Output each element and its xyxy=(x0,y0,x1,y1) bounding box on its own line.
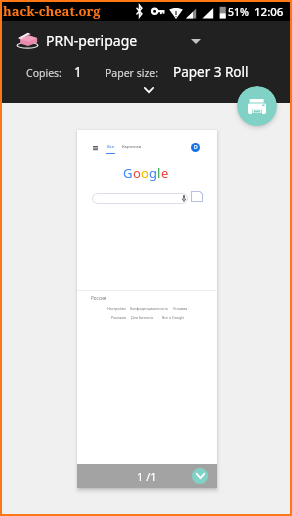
staticText: Paper size: xyxy=(105,66,159,80)
staticText: l xyxy=(157,164,161,182)
button[interactable]: Account xyxy=(191,143,200,152)
staticText: e xyxy=(161,164,169,182)
staticText: hack-cheat.org xyxy=(3,2,101,20)
staticText: G xyxy=(123,164,133,182)
staticText: o xyxy=(133,164,141,182)
button[interactable]: Paper size xyxy=(140,81,158,99)
staticText: o xyxy=(141,164,149,182)
staticText: 1 /1 xyxy=(137,469,157,484)
staticText: Россия xyxy=(91,295,107,301)
staticText: Copies: xyxy=(26,66,62,80)
staticText: g xyxy=(149,164,157,182)
button[interactable]: Next page xyxy=(192,468,208,484)
staticText: Настройки xyxy=(107,306,126,311)
button[interactable]: Select printer xyxy=(184,29,208,53)
staticText: Реклама xyxy=(111,315,126,320)
staticText: Paper 3 Roll xyxy=(173,63,249,81)
staticText: Все xyxy=(107,144,115,150)
staticText: 51% xyxy=(228,5,249,19)
staticText: 12:06 xyxy=(254,4,284,20)
staticText: Условия xyxy=(173,306,188,311)
staticText: Все о Google xyxy=(162,315,185,320)
staticText: Конфиденциальность xyxy=(130,306,169,311)
staticText: D xyxy=(194,144,198,151)
staticText: PRN-peripage xyxy=(46,31,138,50)
staticText: 1 xyxy=(74,63,82,81)
staticText: Картинки xyxy=(122,144,142,150)
button[interactable]: Print xyxy=(237,86,277,126)
staticText: Для бизнеса xyxy=(131,315,153,320)
